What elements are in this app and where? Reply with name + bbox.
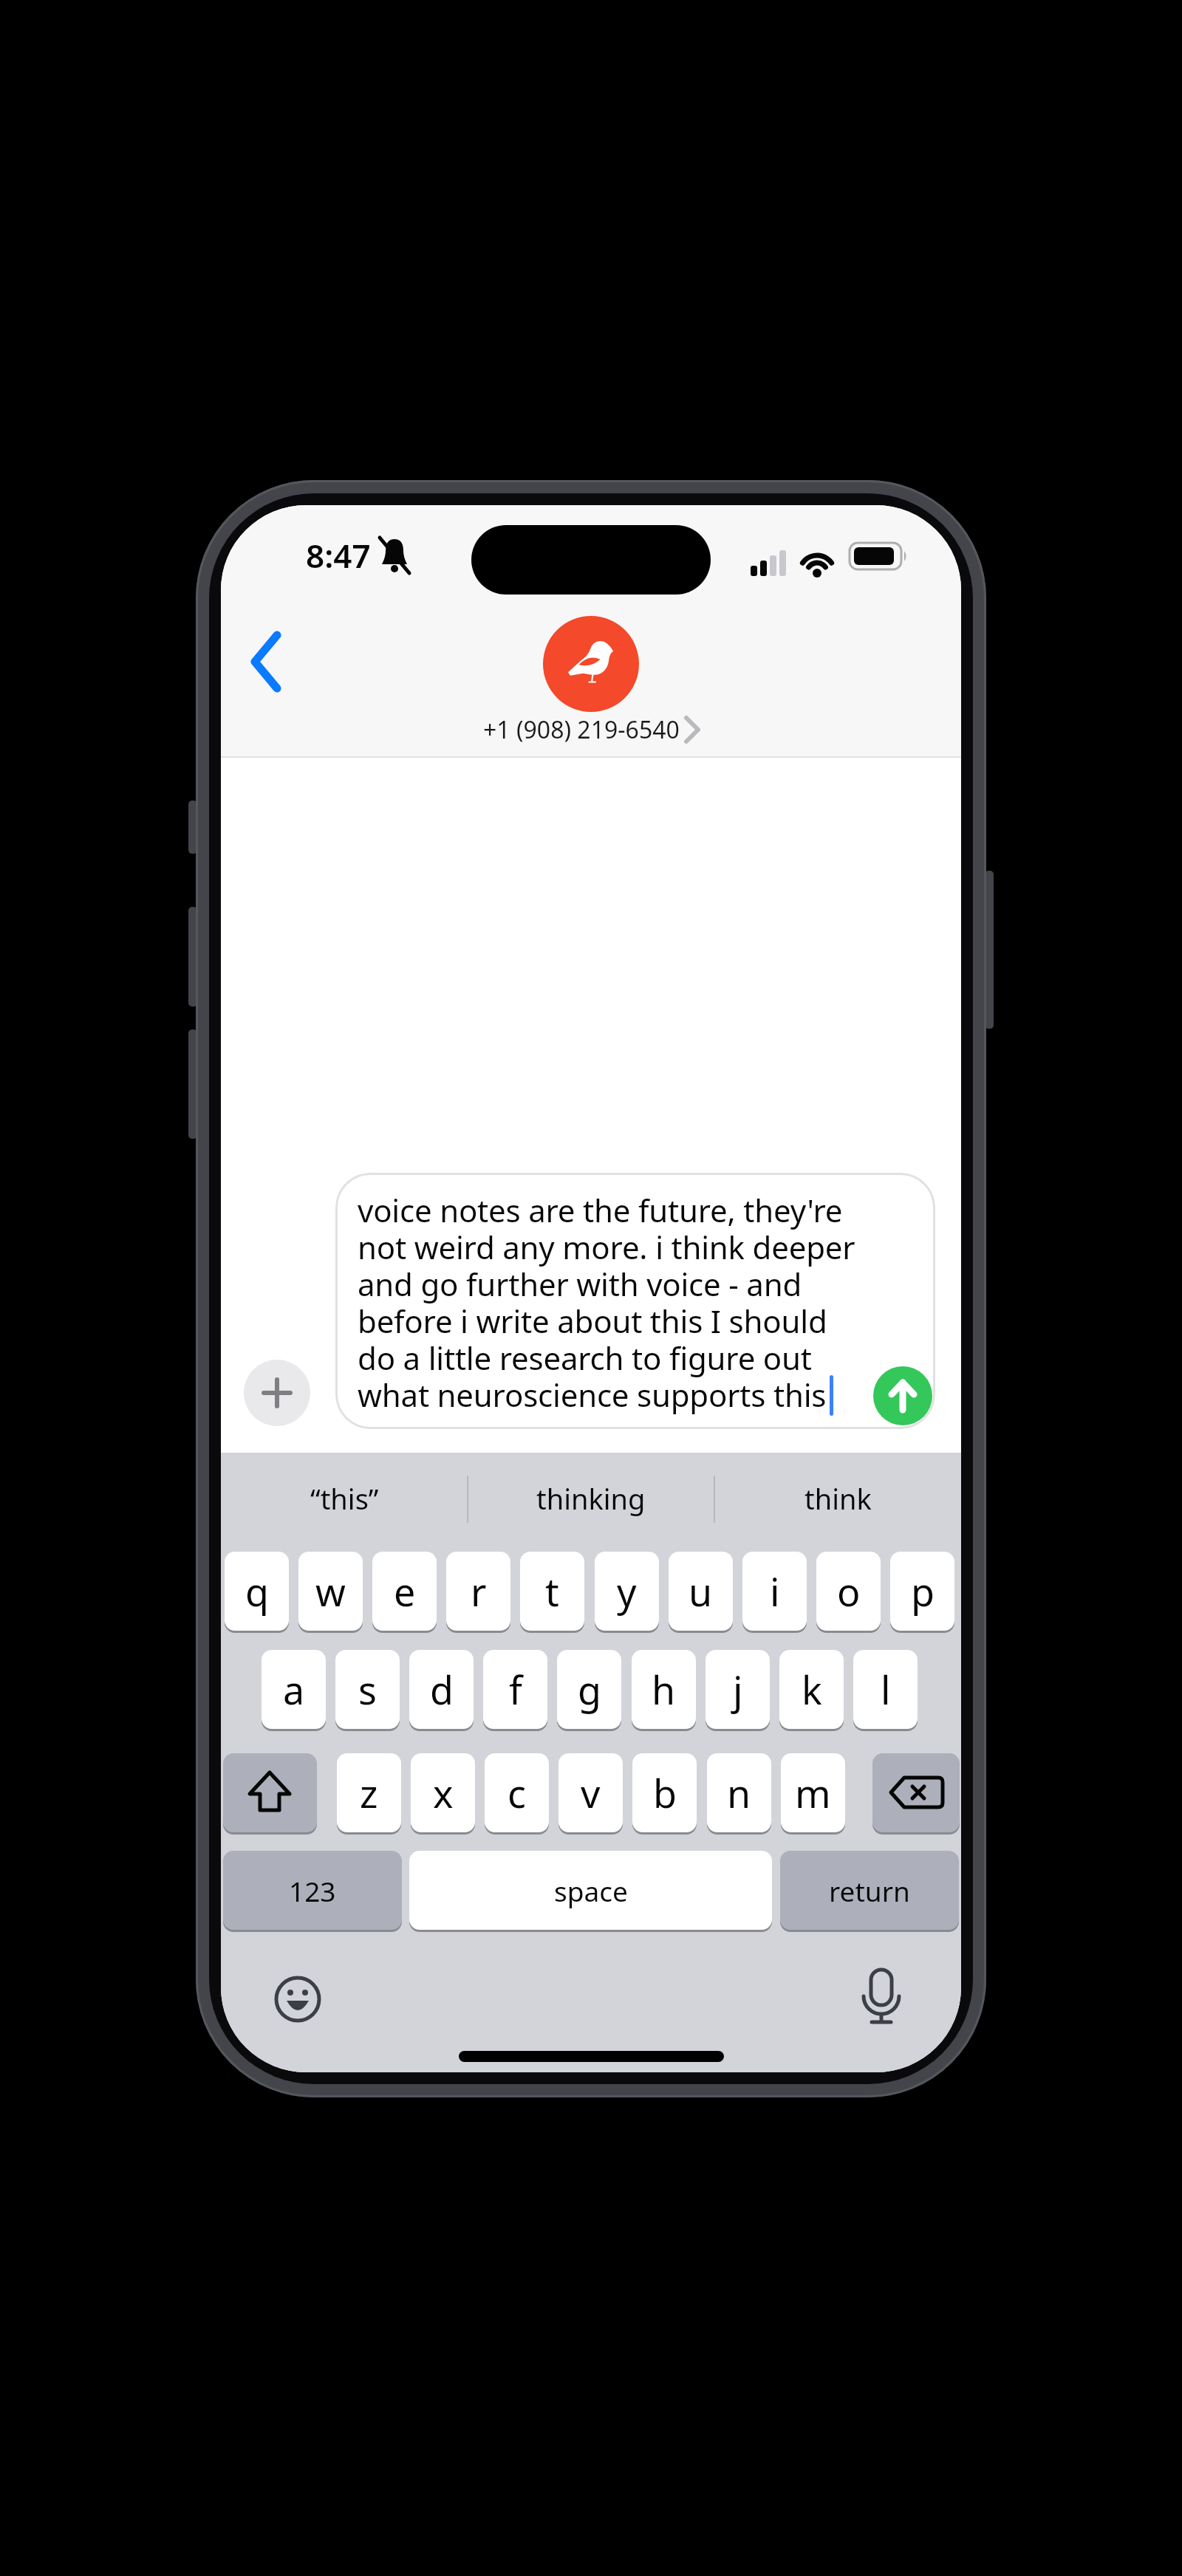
staticText: s	[358, 1663, 377, 1716]
button[interactable]: u	[669, 1552, 733, 1633]
button[interactable]	[223, 1753, 317, 1835]
button[interactable]: m	[781, 1753, 845, 1835]
button[interactable]: i	[742, 1552, 807, 1633]
staticText: p	[911, 1565, 935, 1617]
staticText: a	[283, 1663, 305, 1716]
staticText: +1 (908) 219-6540	[483, 713, 680, 746]
button[interactable]: x	[411, 1753, 475, 1835]
staticText: z	[360, 1767, 378, 1819]
button[interactable]	[268, 1970, 327, 2029]
button[interactable]: q	[225, 1552, 289, 1633]
button[interactable]: think	[714, 1465, 961, 1532]
button[interactable]: v	[558, 1753, 623, 1835]
button[interactable]: space	[409, 1851, 772, 1932]
staticText: space	[554, 1872, 628, 1909]
button[interactable]: j	[706, 1650, 770, 1731]
button[interactable]: g	[557, 1650, 621, 1731]
staticText: i	[770, 1565, 780, 1617]
button[interactable]	[872, 1753, 960, 1835]
staticText: think	[804, 1479, 872, 1518]
button[interactable]: a	[262, 1650, 326, 1731]
staticText: v	[581, 1767, 601, 1819]
staticText: j	[733, 1663, 743, 1716]
staticText: e	[394, 1565, 416, 1617]
staticText: k	[802, 1663, 822, 1716]
button[interactable]: c	[485, 1753, 549, 1835]
staticText: 8:47	[306, 533, 371, 576]
button[interactable]	[244, 1360, 310, 1426]
button[interactable]: y	[595, 1552, 659, 1633]
staticText: h	[652, 1663, 676, 1716]
staticText: o	[837, 1565, 861, 1617]
button[interactable]	[852, 1970, 911, 2029]
staticText: g	[578, 1663, 601, 1716]
staticText: f	[509, 1663, 522, 1716]
button[interactable]: thinking	[468, 1465, 714, 1532]
staticText: return	[829, 1872, 910, 1909]
button[interactable]: +1 (908) 219-6540	[221, 709, 961, 750]
button[interactable]: return	[780, 1851, 959, 1932]
staticText: r	[471, 1565, 487, 1617]
button[interactable]: k	[779, 1650, 844, 1731]
button[interactable]: p	[890, 1552, 954, 1633]
button[interactable]: t	[520, 1552, 584, 1633]
staticText: “this”	[310, 1479, 379, 1518]
button[interactable]	[543, 616, 639, 712]
staticText: y	[617, 1565, 637, 1617]
button[interactable]: w	[298, 1552, 363, 1633]
button[interactable]: h	[632, 1650, 696, 1731]
staticText: 123	[289, 1872, 336, 1909]
staticText: voice notes are the future, they're not …	[358, 1189, 855, 1417]
button[interactable]: f	[483, 1650, 547, 1731]
button[interactable]: n	[707, 1753, 771, 1835]
button[interactable]	[873, 1366, 932, 1425]
staticText: q	[245, 1565, 269, 1617]
staticText: n	[727, 1767, 751, 1819]
button[interactable]: s	[335, 1650, 400, 1731]
button[interactable]: l	[853, 1650, 918, 1731]
staticText: x	[433, 1767, 454, 1819]
button[interactable]: b	[632, 1753, 697, 1835]
button[interactable]: z	[337, 1753, 401, 1835]
staticText: u	[689, 1565, 713, 1617]
staticText: t	[545, 1565, 559, 1617]
staticText: d	[430, 1663, 454, 1716]
button[interactable]: “this”	[221, 1465, 468, 1532]
button[interactable]: d	[409, 1650, 474, 1731]
staticText: c	[508, 1767, 526, 1819]
staticText: b	[653, 1767, 677, 1819]
staticText: l	[881, 1663, 891, 1716]
button[interactable]: e	[372, 1552, 437, 1633]
button[interactable]: 123	[223, 1851, 402, 1932]
staticText: thinking	[536, 1479, 646, 1518]
button[interactable]: r	[446, 1552, 510, 1633]
staticText: m	[795, 1767, 831, 1819]
staticText: w	[315, 1565, 346, 1617]
button[interactable]	[236, 616, 310, 705]
button[interactable]: o	[816, 1552, 881, 1633]
